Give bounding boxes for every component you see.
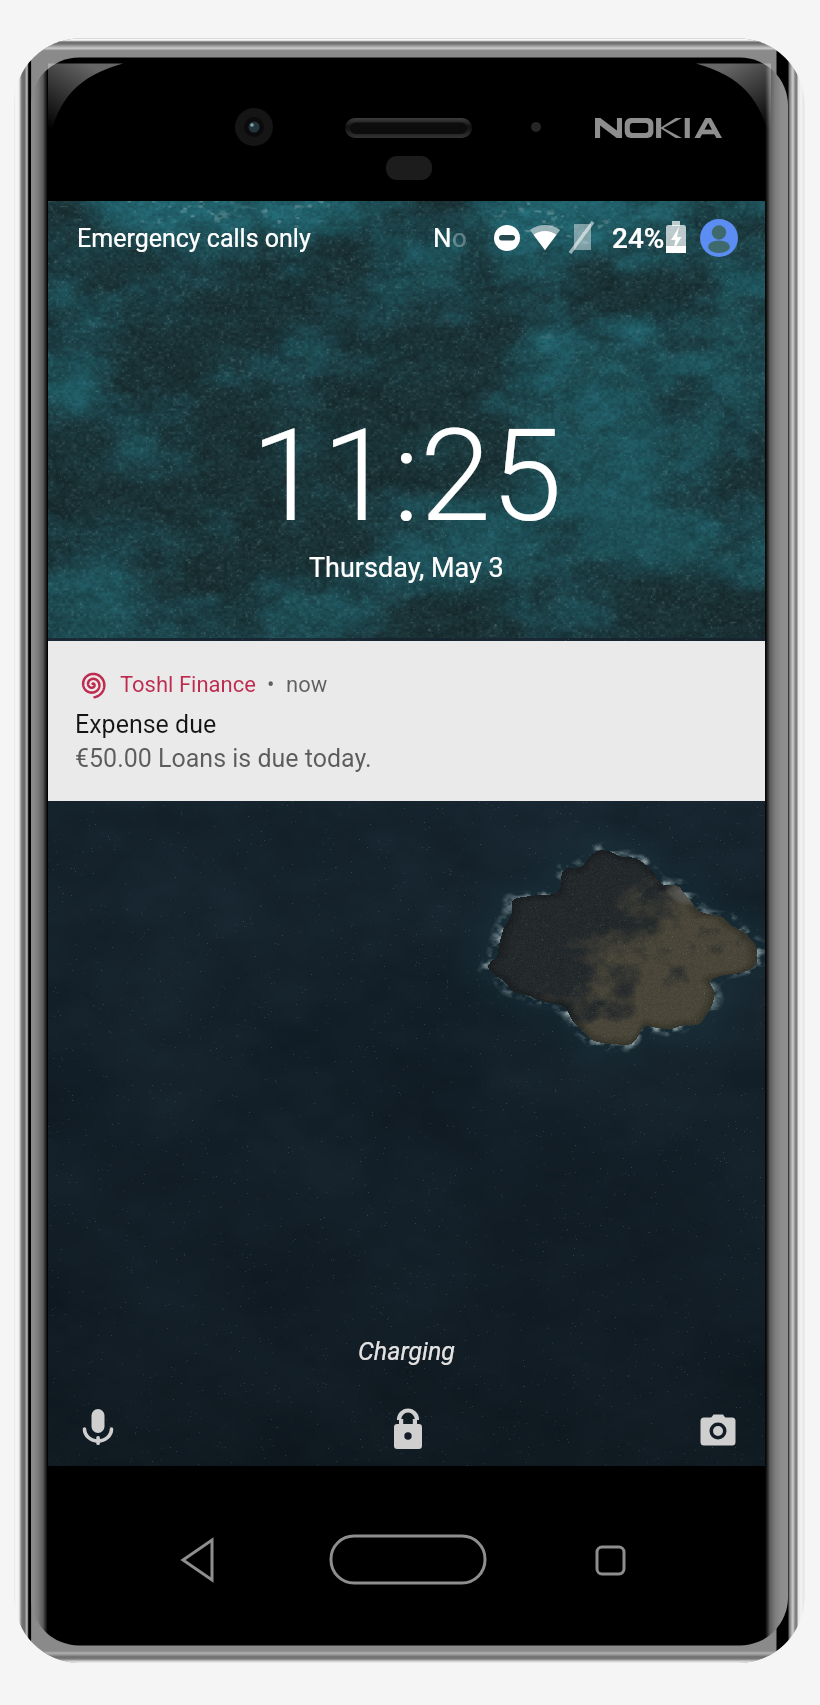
staticText: Toshl Finance — [120, 672, 256, 698]
button[interactable]: User account — [699, 218, 739, 258]
staticText: Expense due — [75, 710, 217, 739]
other: Battery charging — [665, 219, 687, 257]
staticText: now — [286, 672, 328, 698]
other: No SIM — [572, 220, 596, 256]
staticText: Charging — [48, 1337, 765, 1366]
staticText: Thursday, May 3 — [309, 552, 504, 584]
staticText: N — [433, 223, 452, 253]
button[interactable]: Camera — [686, 1396, 750, 1460]
button[interactable]: Unlock — [376, 1396, 440, 1460]
staticText: 11:25 — [251, 401, 562, 551]
staticText: • — [256, 672, 286, 698]
staticText: 24% — [612, 222, 665, 255]
button[interactable]: Toshl Finance — [48, 641, 765, 801]
other: Do not disturb — [494, 220, 520, 256]
button[interactable]: Voice assistant — [66, 1396, 130, 1460]
other: Wi-Fi — [528, 220, 562, 256]
staticText: €50.00 Loans is due today. — [75, 744, 372, 773]
staticText: o — [452, 223, 467, 253]
staticText: Emergency calls only — [77, 224, 311, 253]
